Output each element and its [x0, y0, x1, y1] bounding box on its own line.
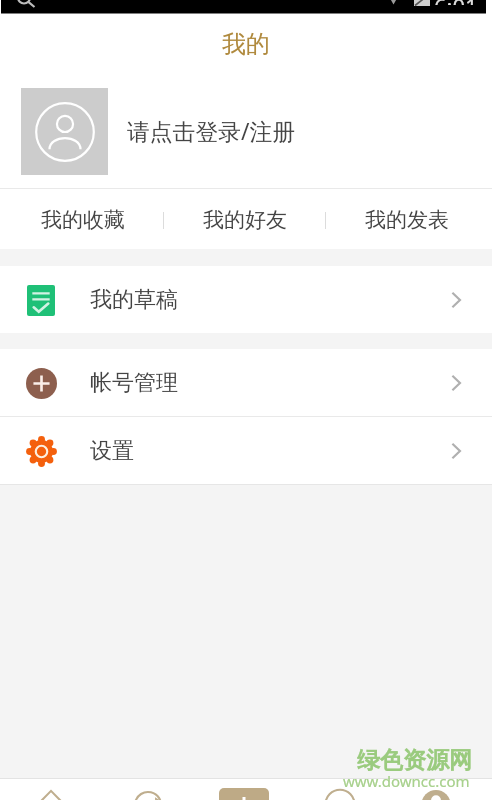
staticText: 我的好友	[203, 207, 287, 233]
staticText: 请点击登录/注册	[127, 116, 296, 147]
staticText: 帐号管理	[90, 369, 178, 397]
button[interactable]: 帐号管理	[0, 349, 492, 416]
staticText: 设置	[90, 437, 134, 465]
button[interactable]: 我的发表	[326, 190, 487, 250]
button[interactable]: Refresh	[99, 779, 196, 800]
staticText: 我的收藏	[41, 207, 125, 233]
button[interactable]: 我的收藏	[3, 190, 163, 250]
button[interactable]: Messages	[292, 779, 388, 800]
button[interactable]: 我的好友	[164, 190, 325, 250]
staticText: 6:01	[434, 0, 478, 5]
staticText: 我的草稿	[90, 286, 178, 314]
staticText: 我的	[222, 29, 270, 59]
staticText: www.downcc.com	[343, 771, 470, 791]
button[interactable]: 设置	[0, 417, 492, 484]
staticText: 绿色资源网	[357, 746, 472, 775]
button[interactable]: 我的草稿	[0, 266, 492, 333]
button[interactable]: Mine	[388, 779, 484, 800]
button[interactable]: Add	[196, 779, 292, 800]
staticText: 我的发表	[365, 207, 449, 233]
button[interactable]: 请点击登录/注册	[0, 87, 492, 175]
button[interactable]: Home	[2, 779, 99, 800]
